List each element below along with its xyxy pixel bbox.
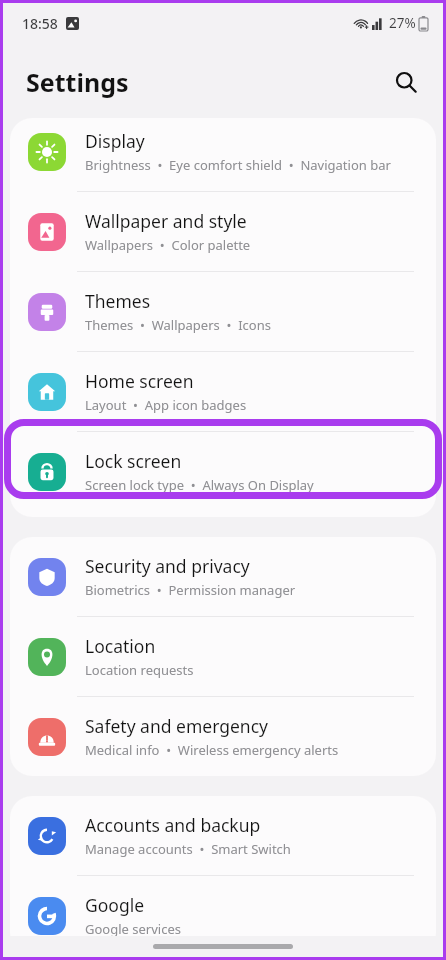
staticText: Themes — [85, 289, 151, 313]
staticText: Screen lock type • Always On Display — [85, 476, 314, 494]
staticText: Themes • Wallpapers • Icons — [85, 316, 271, 334]
staticText: Medical info • Wireless emergency alerts — [85, 741, 339, 759]
button[interactable]: Safety and emergency — [10, 697, 436, 776]
staticText: Home screen — [85, 369, 194, 393]
button[interactable]: Security and privacy — [10, 537, 436, 616]
button[interactable]: Wallpaper and style — [10, 192, 436, 271]
staticText: Biometrics • Permission manager — [85, 581, 296, 599]
staticText: Location requests — [85, 661, 194, 679]
staticText: Manage accounts • Smart Switch — [85, 840, 291, 858]
staticText: Accounts and backup — [85, 813, 261, 837]
button[interactable]: Lock screen — [10, 432, 436, 511]
button[interactable]: Google — [10, 876, 436, 955]
staticText: Google — [85, 893, 145, 917]
button[interactable]: Location — [10, 617, 436, 696]
button[interactable]: Search — [384, 60, 428, 104]
staticText: 27% — [389, 14, 416, 32]
button[interactable]: Accounts and backup — [10, 796, 436, 875]
staticText: Security and privacy — [85, 554, 250, 578]
staticText: Location — [85, 634, 156, 658]
staticText: Wallpapers • Color palette — [85, 236, 251, 254]
staticText: Lock screen — [85, 449, 182, 473]
staticText: Display — [85, 129, 145, 153]
staticText: Wallpaper and style — [85, 209, 247, 233]
button[interactable]: Themes — [10, 272, 436, 351]
staticText: Layout • App icon badges — [85, 396, 247, 414]
button[interactable]: Display — [10, 118, 436, 191]
staticText: Safety and emergency — [85, 714, 268, 738]
staticText: Settings — [26, 65, 129, 99]
staticText: Brightness • Eye comfort shield • Naviga… — [85, 156, 391, 174]
staticText: 18:58 — [22, 14, 58, 33]
button[interactable]: Home screen — [10, 352, 436, 431]
staticText: Google services — [85, 920, 181, 938]
